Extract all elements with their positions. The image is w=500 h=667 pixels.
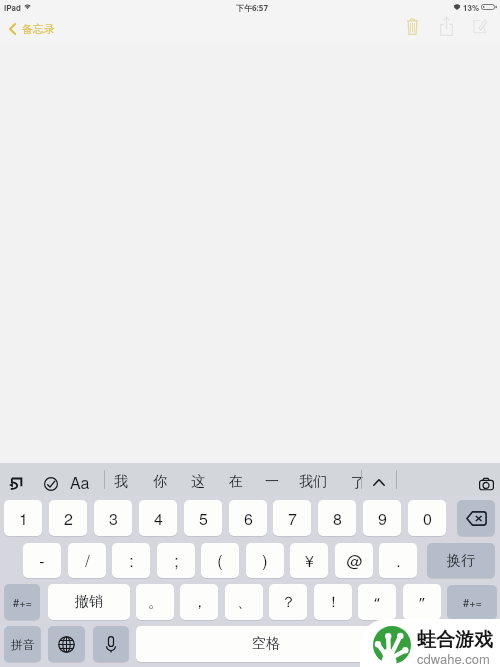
button[interactable]: 。 — [136, 584, 174, 620]
button[interactable]: ; — [157, 543, 195, 578]
button[interactable]: 6 — [229, 500, 267, 536]
staticText: 13% — [463, 2, 480, 13]
staticText: 这 — [191, 473, 205, 491]
staticText: . — [396, 549, 401, 572]
staticText: 。 — [148, 593, 163, 612]
button[interactable]: ！ — [314, 584, 352, 620]
button[interactable]: 1 — [4, 500, 42, 536]
button[interactable]: Backspace — [457, 500, 495, 536]
button[interactable]: 我 — [108, 465, 134, 498]
button[interactable]: Undo — [2, 467, 29, 500]
button[interactable]: Checklist — [37, 467, 64, 500]
staticText: 下午6:57 — [236, 2, 268, 13]
staticText: 5 — [199, 507, 208, 530]
staticText: #+= — [463, 594, 482, 610]
button[interactable]: 一 — [259, 465, 285, 498]
button[interactable]: ？ — [269, 584, 307, 620]
staticText: 你 — [153, 473, 167, 491]
button[interactable]: Aa — [66, 466, 94, 499]
button[interactable]: 3 — [94, 500, 132, 536]
button[interactable]: Switch keyboard — [48, 626, 85, 662]
button[interactable]: / — [68, 543, 106, 578]
button[interactable]: 5 — [184, 500, 222, 536]
staticText: 2 — [64, 507, 73, 530]
staticText: 了 — [351, 474, 361, 492]
staticText: ¥ — [305, 549, 314, 572]
button[interactable]: Dictation — [93, 626, 129, 662]
staticText: 换行 — [447, 552, 475, 570]
button[interactable]: Share — [432, 13, 460, 39]
button[interactable]: More candidates — [366, 466, 392, 499]
staticText: 蛙合游戏 — [417, 628, 493, 652]
button[interactable]: ” — [403, 584, 441, 620]
staticText: ) — [262, 549, 268, 572]
staticText: : — [129, 549, 134, 572]
staticText: 0 — [423, 507, 432, 530]
button[interactable]: ) — [246, 543, 284, 578]
staticText: ！ — [326, 593, 341, 612]
button[interactable]: 9 — [363, 500, 401, 536]
button[interactable]: ( — [201, 543, 239, 578]
staticText: 、 — [237, 593, 252, 612]
staticText: ; — [174, 549, 179, 572]
button[interactable]: 空格 — [136, 626, 395, 662]
button[interactable]: Camera — [473, 467, 499, 500]
button[interactable]: 7 — [273, 500, 311, 536]
staticText: @ — [346, 549, 363, 572]
button[interactable]: 0 — [408, 500, 446, 536]
staticText: 我们 — [299, 473, 327, 491]
button[interactable]: - — [23, 543, 61, 578]
button[interactable]: 、 — [225, 584, 263, 620]
button[interactable]: 4 — [139, 500, 177, 536]
staticText: 拼音 — [11, 637, 35, 652]
button[interactable]: ¥ — [290, 543, 328, 578]
button[interactable]: #+= — [447, 585, 497, 619]
button[interactable]: 撤销 — [48, 584, 130, 620]
button[interactable]: 这 — [185, 465, 211, 498]
button[interactable]: Delete — [398, 13, 426, 39]
staticText: iPad — [4, 2, 21, 13]
button[interactable]: “ — [358, 584, 396, 620]
staticText: 8 — [333, 507, 342, 530]
staticText: ” — [419, 592, 425, 612]
button[interactable]: 我们 — [295, 465, 331, 498]
button[interactable]: 换行 — [427, 543, 495, 578]
button[interactable]: ， — [180, 584, 218, 620]
staticText: 1 — [19, 507, 28, 530]
button[interactable]: 2 — [49, 500, 87, 536]
button[interactable]: New note — [466, 13, 494, 39]
staticText: 在 — [229, 473, 243, 491]
staticText: / — [85, 549, 90, 572]
staticText: cdwahe.com — [417, 649, 490, 667]
button[interactable]: 备忘录 — [0, 18, 65, 40]
staticText: - — [39, 549, 45, 572]
button[interactable]: 你 — [147, 465, 173, 498]
staticText: ？ — [281, 593, 296, 612]
button[interactable]: 在 — [223, 465, 249, 498]
staticText: 我 — [114, 473, 128, 491]
staticText: 空格 — [252, 635, 280, 653]
button[interactable]: 8 — [318, 500, 356, 536]
staticText: ( — [217, 549, 223, 572]
staticText: 7 — [288, 507, 297, 530]
staticText: 备忘录 — [22, 22, 55, 36]
staticText: #+= — [13, 594, 32, 610]
staticText: 9 — [378, 507, 387, 530]
button[interactable]: #+= — [4, 584, 40, 620]
staticText: 3 — [109, 507, 118, 530]
staticText: 4 — [154, 507, 163, 530]
staticText: “ — [374, 592, 380, 612]
staticText: 6 — [244, 507, 253, 530]
button[interactable]: : — [112, 543, 150, 578]
button[interactable]: @ — [335, 543, 373, 578]
button[interactable]: . — [379, 543, 417, 578]
button[interactable]: 拼音 — [4, 626, 41, 662]
staticText: 一 — [265, 473, 279, 491]
staticText: Aa — [70, 471, 90, 494]
staticText: ， — [192, 593, 207, 612]
staticText: 撤销 — [75, 593, 103, 611]
